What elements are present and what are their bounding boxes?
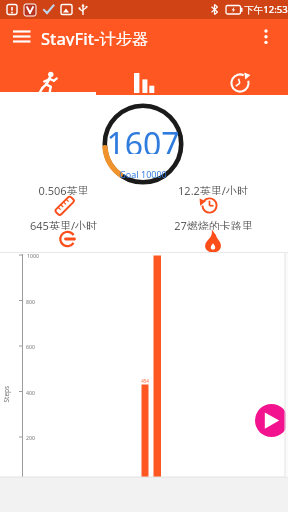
button[interactable]: [255, 404, 288, 437]
staticText: 645英里/小时: [30, 218, 97, 230]
button[interactable]: [0, 57, 96, 95]
staticText: 下午12:53: [244, 3, 288, 16]
button[interactable]: [192, 57, 288, 95]
staticText: 1607: [106, 122, 180, 154]
button[interactable]: [96, 57, 192, 95]
staticText: 1000: [27, 252, 39, 259]
button[interactable]: [256, 26, 278, 48]
staticText: 800: [26, 298, 35, 305]
staticText: 200: [26, 434, 35, 441]
staticText: 400: [26, 389, 35, 396]
staticText: 0.506英里: [38, 183, 89, 195]
staticText: 27燃烧的卡路里: [174, 218, 253, 230]
button[interactable]: [8, 26, 36, 48]
staticText: Steps: [1, 385, 10, 402]
staticText: 454: [141, 378, 149, 384]
staticText: StayFit-计步器: [41, 27, 149, 46]
staticText: 600: [26, 343, 35, 350]
staticText: 12.2英里/小时: [178, 183, 248, 195]
staticText: Goal 10000: [119, 168, 167, 179]
